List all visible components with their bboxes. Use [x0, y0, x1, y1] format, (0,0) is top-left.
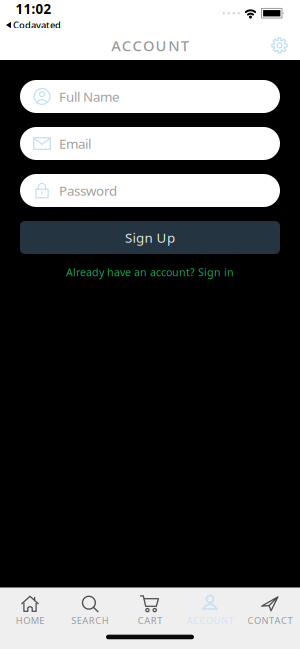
button[interactable]: ACCOUNT — [180, 594, 240, 627]
staticText: Email — [59, 135, 91, 152]
staticText: Already have an account? Sign in — [66, 265, 234, 279]
button[interactable]: SEARCH — [60, 594, 120, 627]
staticText: SEARCH — [71, 614, 109, 627]
button[interactable]: Email — [20, 127, 280, 160]
button[interactable]: HOME — [0, 594, 60, 627]
button[interactable]: Settings — [263, 29, 296, 62]
staticText: CART — [138, 614, 162, 627]
staticText: 11:02 — [16, 0, 52, 18]
button[interactable]: CONTACT — [240, 594, 300, 627]
staticText: HOME — [16, 614, 44, 627]
staticText: ACCOUNT — [186, 614, 233, 627]
staticText: ACCOUNT — [111, 36, 189, 55]
staticText: CONTACT — [247, 614, 292, 627]
staticText: Full Name — [59, 88, 120, 105]
button[interactable]: Already have an account? Sign in — [66, 268, 234, 279]
button[interactable]: Sign Up — [20, 221, 280, 254]
staticText: Password — [59, 182, 117, 199]
staticText: Sign Up — [125, 229, 175, 246]
button[interactable]: CART — [120, 594, 180, 627]
button[interactable]: Full Name — [20, 80, 280, 113]
staticText: Codavated — [13, 19, 61, 31]
button[interactable]: Password — [20, 174, 280, 207]
